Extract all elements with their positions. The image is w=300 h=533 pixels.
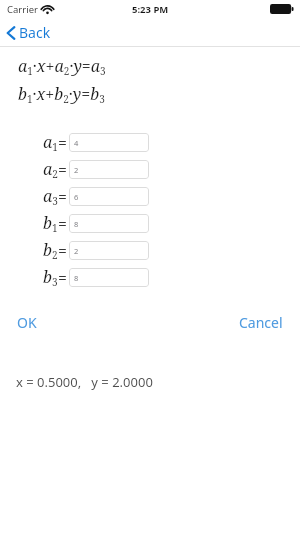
staticText: 2 <box>74 246 79 256</box>
staticText: = <box>58 132 67 154</box>
staticText: 6 <box>74 192 79 202</box>
staticText: x = 0.5000, y = 2.0000 <box>16 373 153 391</box>
staticText: Carrier <box>7 3 38 16</box>
staticText: a1·x+a2·y=a3 <box>18 55 106 78</box>
staticText: = <box>58 159 67 181</box>
button[interactable]: Cancel <box>222 309 300 335</box>
staticText: 5:23 PM <box>132 3 169 16</box>
staticText: 4 <box>74 138 79 148</box>
staticText: Back <box>19 23 51 42</box>
staticText: 2 <box>74 165 79 175</box>
button[interactable]: OK <box>0 309 54 335</box>
staticText: Cancel <box>239 313 283 331</box>
button[interactable]: a3 input <box>69 187 149 206</box>
staticText: a2 <box>43 158 58 181</box>
button[interactable]: Back <box>0 20 61 45</box>
button[interactable]: a2 input <box>69 160 149 179</box>
staticText: 8 <box>74 219 79 229</box>
staticText: = <box>58 213 67 235</box>
staticText: = <box>58 267 67 289</box>
staticText: a1 <box>43 131 58 154</box>
staticText: a3 <box>43 185 58 208</box>
staticText: b1·x+b2·y=b3 <box>18 83 105 106</box>
staticText: b1 <box>43 212 58 235</box>
staticText: b3 <box>43 266 58 289</box>
staticText: = <box>58 240 67 262</box>
button[interactable]: a1 input <box>69 133 149 152</box>
button[interactable]: b2 input <box>69 241 149 260</box>
staticText: = <box>58 186 67 208</box>
staticText: 8 <box>74 273 79 283</box>
staticText: b2 <box>43 239 58 262</box>
staticText: OK <box>17 313 37 331</box>
button[interactable]: b1 input <box>69 214 149 233</box>
button[interactable]: b3 input <box>69 268 149 287</box>
